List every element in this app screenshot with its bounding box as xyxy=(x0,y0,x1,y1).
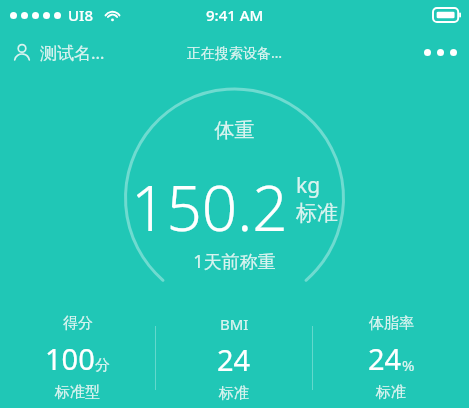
staticText: 标准 xyxy=(296,200,338,226)
staticText: 正在搜索设备… xyxy=(187,43,283,62)
staticText: UI8 xyxy=(68,5,93,25)
button[interactable]: 体脂率 xyxy=(313,308,469,408)
staticText: 24 xyxy=(368,339,402,378)
staticText: 24 xyxy=(217,340,251,379)
staticText: 得分 xyxy=(63,314,93,333)
staticText: 标准 xyxy=(376,383,406,402)
staticText: 体脂率 xyxy=(369,314,414,333)
staticText: % xyxy=(402,355,415,375)
staticText: BMI xyxy=(220,314,249,334)
button[interactable]: 得分 xyxy=(0,308,155,408)
staticText: 分 xyxy=(95,356,110,375)
staticText: kg xyxy=(296,171,321,200)
staticText: 测试名… xyxy=(40,41,105,64)
staticText: 9:41 AM xyxy=(206,5,264,25)
staticText: 100 xyxy=(45,339,95,378)
staticText: 150.2 xyxy=(131,165,288,249)
button[interactable]: 测试名… xyxy=(0,35,117,70)
staticText: 标准 xyxy=(219,384,249,403)
button[interactable]: BMI xyxy=(156,308,312,408)
button[interactable]: More options xyxy=(412,35,469,70)
staticText: 1天前称重 xyxy=(0,249,469,274)
staticText: 体重 xyxy=(0,118,469,143)
staticText: 标准型 xyxy=(55,383,100,402)
